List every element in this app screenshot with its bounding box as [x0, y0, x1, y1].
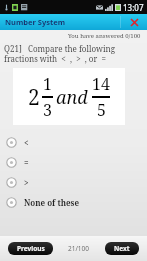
- staticText: Number System: [5, 17, 66, 27]
- staticText: Q21] Compare the following fractions wit…: [4, 43, 143, 64]
- staticText: 1: [43, 73, 52, 95]
- button[interactable]: <: [0, 132, 147, 152]
- staticText: 3: [43, 99, 52, 121]
- staticText: 14: [92, 73, 110, 95]
- button[interactable]: None of these: [0, 192, 147, 212]
- staticText: None of these: [24, 197, 80, 208]
- button[interactable]: >: [0, 172, 147, 192]
- staticText: You have answered 0/100: [68, 32, 141, 40]
- staticText: 13:07: [123, 2, 144, 13]
- staticText: Previous: [17, 244, 45, 253]
- button[interactable]: =: [0, 152, 147, 172]
- staticText: =: [24, 157, 29, 168]
- staticText: 2: [28, 83, 40, 112]
- staticText: 21/100: [68, 244, 90, 253]
- staticText: >: [24, 177, 29, 188]
- button[interactable]: Close: [121, 14, 147, 30]
- staticText: Next: [114, 244, 130, 253]
- staticText: and: [56, 85, 88, 110]
- staticText: 5: [97, 99, 106, 121]
- button[interactable]: Previous: [8, 242, 53, 255]
- staticText: <: [24, 137, 29, 148]
- button[interactable]: Next: [105, 242, 139, 255]
